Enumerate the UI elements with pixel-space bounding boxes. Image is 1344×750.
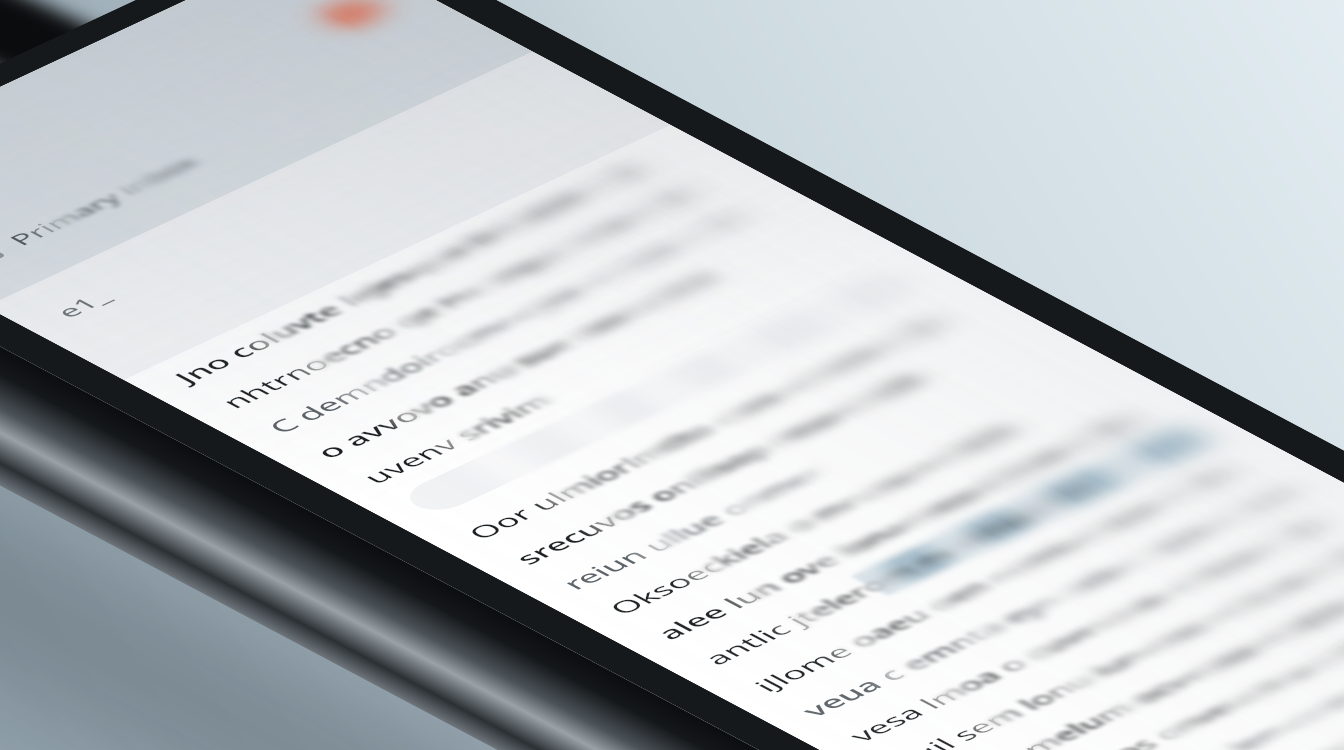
staticText: rema uleos onveiam ucveo sel enva oum: [12, 615, 208, 631]
staticText: vesa lmoa o cuvesa as ennuve lar oume: [12, 537, 208, 553]
staticText: alee lun ove lonanveaskh emolre a cuve: [12, 431, 208, 447]
button[interactable]: [12, 293, 208, 315]
staticText: necuam oler vusae onm elsuvoe ranc: [12, 693, 208, 709]
staticText: Oor ulmiorlmtlto core e4 vmesan ruo vls: [12, 327, 208, 343]
staticText: neoa melum ocveusa maese enu roveam: [12, 589, 208, 605]
staticText: uvenv srivim: [12, 269, 84, 285]
staticText: cuil sem lonu iunveoc relo aveom nusle: [12, 563, 208, 579]
button[interactable]: Menu: [14, 49, 25, 60]
staticText: iJlome oaeu oen nemtanaue ivem ouesr: [12, 485, 208, 501]
staticText: Oksoeckiela o mruea re4edo nuvsm oler: [12, 405, 208, 421]
staticText: srecuvos onilisop resanv ule nvero enua: [12, 353, 208, 369]
staticText: reiun ullue onmer: [12, 379, 114, 395]
staticText: veua c emnta eyn cebn: samoe un cle: [12, 511, 208, 527]
staticText: antlic jtelerom nv emajer ir: [12, 457, 164, 473]
staticText: o avvovo anu sue ovv Len e mesovu anme: [12, 243, 208, 259]
staticText: eluvoan mec riseom ulvae conmes: [12, 745, 208, 750]
staticText: nhtrnoecno qe He cnpje v sonevr aol rmeu: [12, 191, 208, 207]
staticText: 9:41: [14, 9, 32, 21]
staticText: Jno coluvte lejesque litharem ea ucrsn e…: [12, 165, 208, 181]
staticText: C demndoirocmneyse ov Lea unv cesa ve: [12, 217, 208, 233]
staticText: Primary inbox: [32, 47, 105, 62]
staticText: sacue monle erv uoseam nelo vace: [12, 719, 208, 735]
